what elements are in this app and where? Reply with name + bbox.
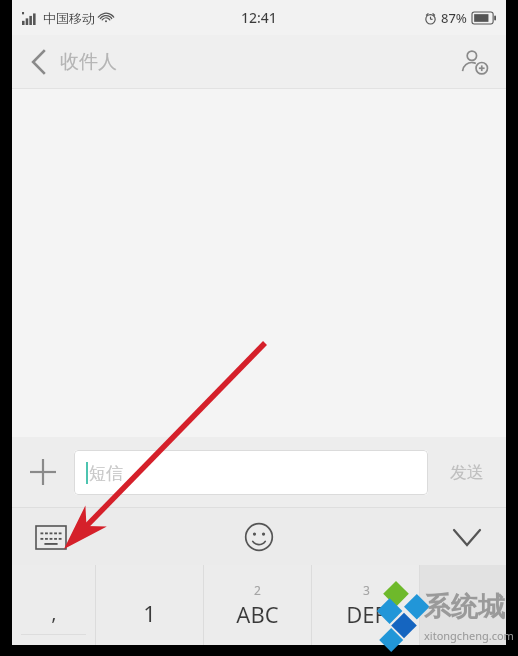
- staticText: ,: [51, 599, 57, 626]
- button[interactable]: 收件人: [12, 35, 133, 88]
- staticText: xitongcheng.com: [424, 628, 514, 643]
- staticText: 12:41: [241, 8, 277, 27]
- staticText: 系统城: [424, 590, 505, 624]
- staticText: DEF: [346, 599, 386, 629]
- button[interactable]: 发送: [428, 437, 506, 507]
- button[interactable]: [420, 565, 506, 645]
- button[interactable]: 1: [96, 565, 203, 645]
- button[interactable]: Add attachment: [12, 437, 74, 507]
- button[interactable]: Add recipient: [444, 35, 506, 88]
- staticText: 2: [254, 582, 261, 598]
- button[interactable]: 2: [204, 565, 311, 645]
- staticText: 3: [363, 582, 370, 598]
- staticText: 收件人: [60, 50, 117, 74]
- button[interactable]: Emoji: [237, 515, 281, 559]
- button[interactable]: 短信: [74, 450, 428, 495]
- button[interactable]: ,: [12, 565, 95, 645]
- button[interactable]: 3: [312, 565, 419, 645]
- button[interactable]: Keyboard: [30, 520, 72, 554]
- staticText: 1: [143, 598, 156, 628]
- staticText: 发送: [450, 462, 484, 483]
- staticText: 短信: [89, 463, 123, 484]
- staticText: 中国移动: [43, 10, 95, 26]
- staticText: 87%: [441, 9, 467, 27]
- staticText: ABC: [236, 599, 279, 629]
- button[interactable]: Hide keyboard: [446, 516, 488, 558]
